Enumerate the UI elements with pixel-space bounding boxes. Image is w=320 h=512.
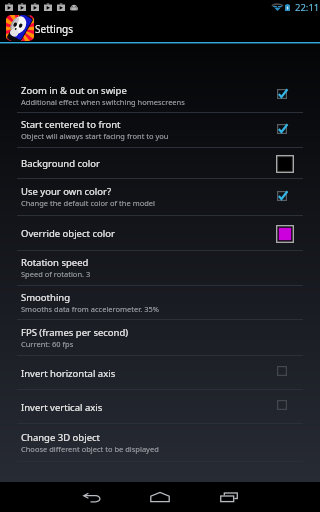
button[interactable]: Start centered to front — [0, 113, 320, 148]
staticText: Choose different object to be displayed — [21, 444, 159, 454]
staticText: Start centered to front — [21, 118, 121, 131]
staticText: Background color — [21, 157, 100, 170]
button[interactable]: FPS (frames per second) — [0, 320, 320, 356]
button[interactable]: Invert horizontal axis — [0, 356, 320, 390]
staticText: Change the default color of the model — [21, 198, 155, 208]
staticText: Current: 60 fps — [21, 339, 74, 349]
button[interactable]: Settings — [0, 14, 320, 42]
staticText: Smoothing — [21, 291, 71, 304]
staticText: Smooths data from accelerometer. 35% — [21, 304, 159, 314]
staticText: Additional effect when switching homescr… — [21, 97, 185, 107]
staticText: Rotation speed — [21, 256, 89, 269]
button[interactable]: Use your own color? — [0, 179, 320, 216]
staticText: Object will always start facing front to… — [21, 131, 169, 141]
staticText: Use your own color? — [21, 185, 112, 198]
staticText: Change 3D object — [21, 431, 100, 444]
staticText: Settings — [35, 22, 74, 36]
button[interactable]: Back — [78, 483, 106, 511]
staticText: Zoom in & out on swipe — [21, 84, 127, 97]
staticText: Invert horizontal axis — [21, 367, 116, 380]
button[interactable]: Recents — [215, 483, 243, 511]
button[interactable]: Smoothing — [0, 286, 320, 320]
staticText: 22:11 — [295, 1, 320, 14]
staticText: FPS (frames per second) — [21, 326, 129, 339]
button[interactable]: Invert vertical axis — [0, 390, 320, 424]
button[interactable]: Rotation speed — [0, 251, 320, 286]
staticText: Invert vertical axis — [21, 401, 103, 414]
staticText: Speed of rotation. 3 — [21, 269, 91, 279]
button[interactable]: Background color — [0, 148, 320, 179]
button[interactable]: Override object color — [0, 216, 320, 251]
button[interactable]: Change 3D object — [0, 424, 320, 462]
staticText: Override object color — [21, 227, 115, 240]
button[interactable]: Home — [146, 483, 174, 511]
button[interactable]: Zoom in & out on swipe — [0, 79, 320, 113]
